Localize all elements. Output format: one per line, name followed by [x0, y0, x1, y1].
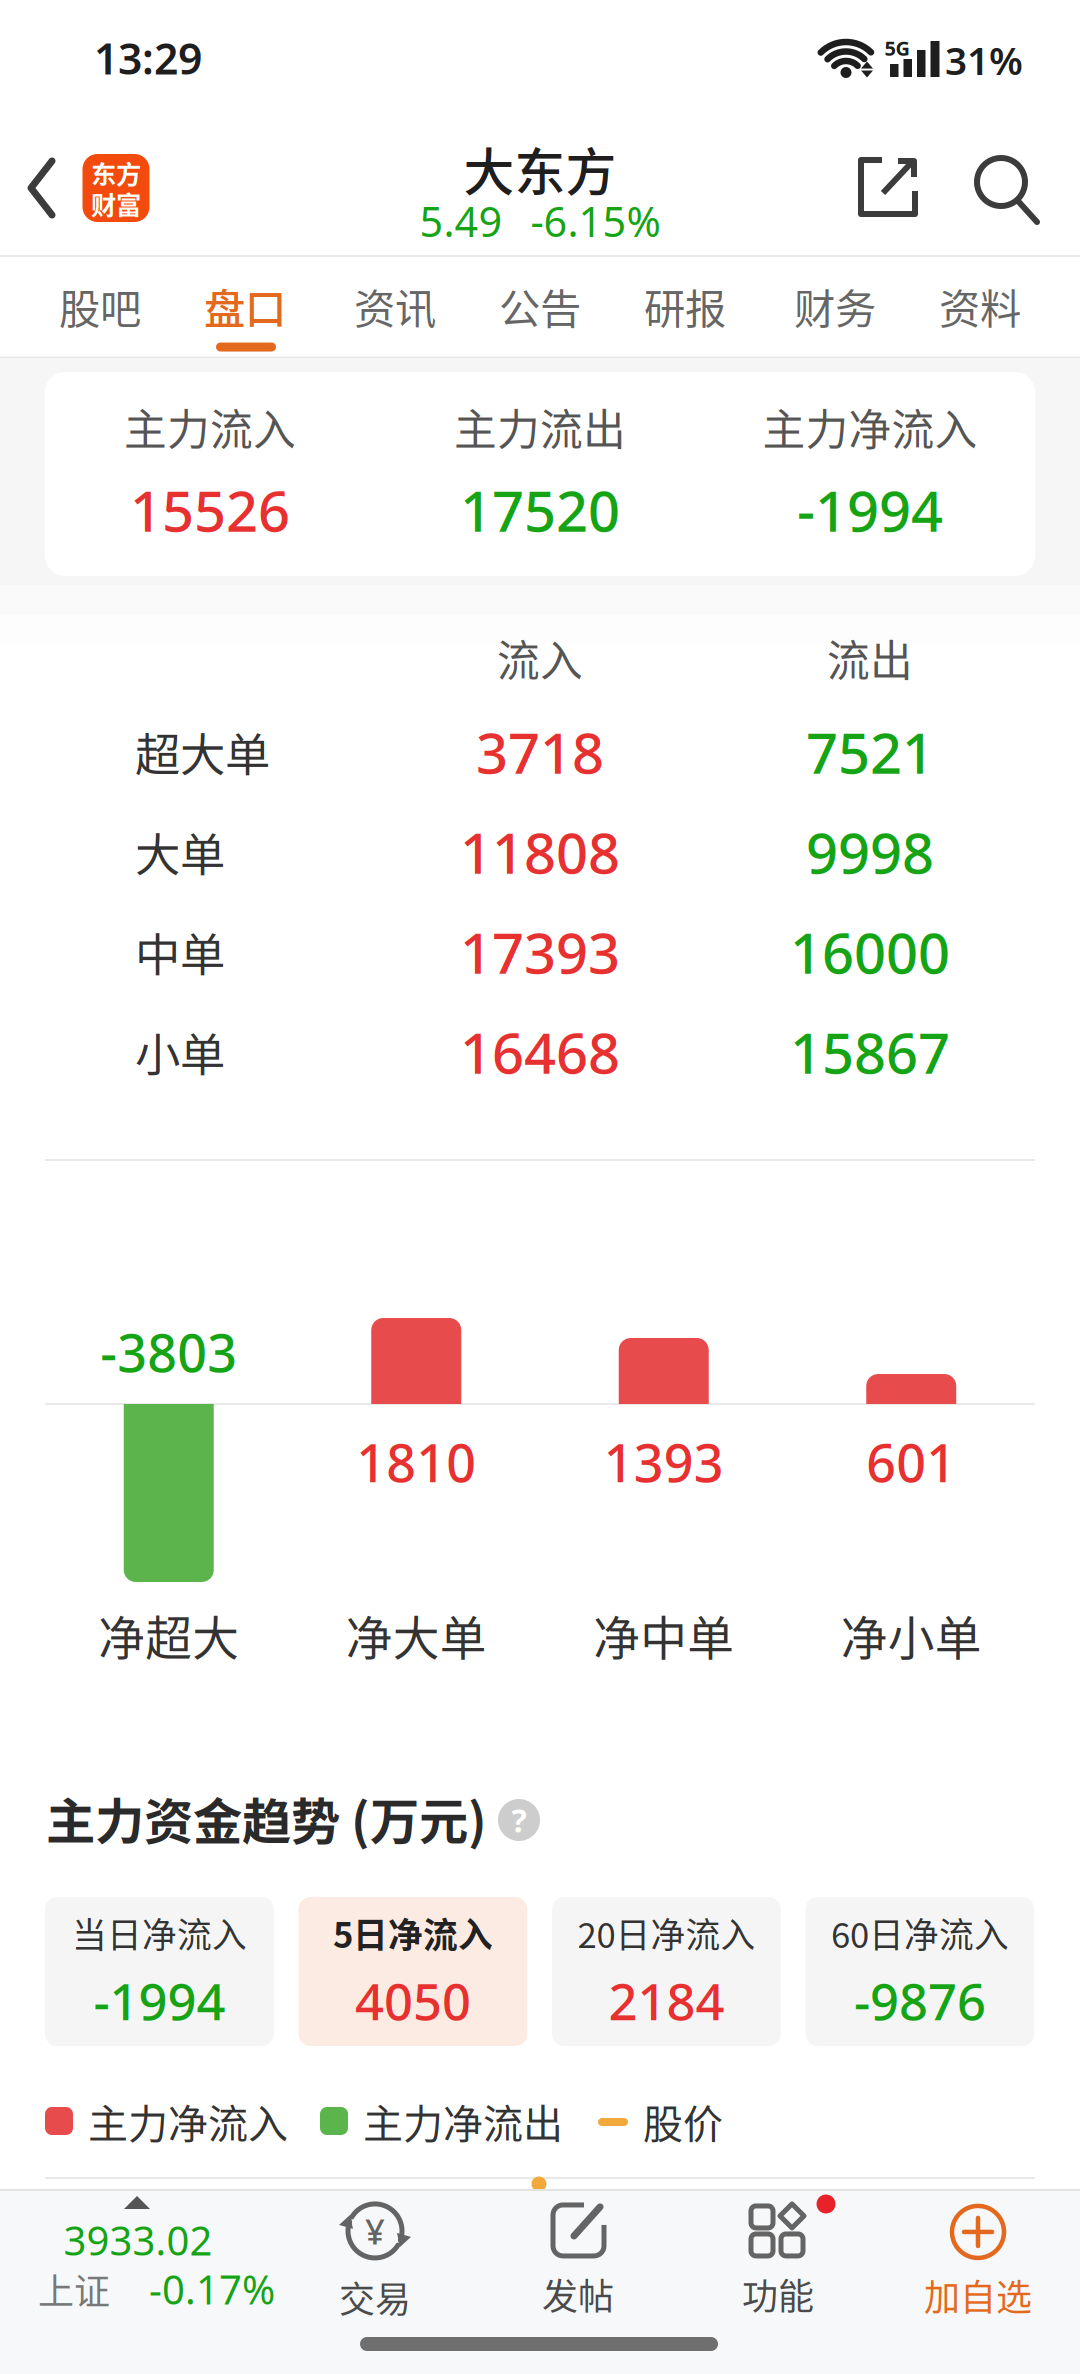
staticText: 15526 [130, 472, 290, 548]
staticText: 31% [945, 34, 1023, 86]
staticText: ? [511, 1798, 526, 1842]
staticText: 60日净流入 [831, 1908, 1009, 1958]
staticText: 1810 [356, 1427, 476, 1497]
button[interactable]: 20日净流入 [552, 1897, 781, 2046]
staticText: 3933.02 [63, 2213, 212, 2267]
staticText: 流入 [497, 627, 583, 689]
staticText: -0.17% [149, 2262, 275, 2316]
staticText: 主力净流出 [363, 2092, 563, 2150]
staticText: 盘口 [204, 276, 286, 336]
staticText: 财富 [91, 185, 141, 222]
button[interactable]: 功能 [703, 2194, 853, 2330]
staticText: 发帖 [542, 2268, 614, 2320]
staticText: 财务 [794, 276, 876, 336]
staticText: 当日净流入 [72, 1908, 247, 1958]
button[interactable]: 返回 [20, 138, 64, 238]
staticText: 4050 [355, 1966, 471, 2035]
staticText: 11808 [460, 814, 620, 890]
staticText: 交易 [339, 2271, 411, 2323]
staticText: 主力流出 [454, 396, 626, 458]
staticText: 9998 [806, 814, 934, 890]
staticText: 16000 [790, 914, 950, 990]
staticText: 7521 [806, 714, 934, 790]
staticText: 5.49 [419, 193, 502, 249]
staticText: 15867 [790, 1014, 950, 1090]
staticText: 主力流入 [124, 396, 296, 458]
button[interactable]: 分享 [858, 157, 918, 217]
button[interactable]: 发帖 [503, 2192, 653, 2328]
staticText: 大东方 [463, 132, 616, 206]
button[interactable]: 搜索 [975, 156, 1041, 224]
staticText: 主力净流入 [88, 2092, 288, 2150]
staticText: 主力资金趋势 (万元) [46, 1782, 487, 1854]
staticText: 上证 [38, 2263, 110, 2315]
button[interactable]: 资料 [915, 270, 1045, 342]
staticText: 5G [884, 34, 909, 62]
staticText: -1994 [93, 1966, 225, 2035]
staticText: 净小单 [841, 1601, 982, 1669]
button[interactable]: 研报 [620, 270, 750, 342]
staticText: -9876 [854, 1966, 986, 2035]
button[interactable]: 5日净流入 [298, 1897, 527, 2046]
staticText: 超大单 [135, 719, 270, 785]
button[interactable]: 财务 [770, 270, 900, 342]
staticText: 2184 [608, 1966, 724, 2035]
staticText: 净大单 [346, 1601, 487, 1669]
button[interactable]: 东方财富 [82, 154, 149, 222]
staticText: 加自选 [924, 2269, 1032, 2321]
staticText: 净超大 [98, 1601, 239, 1669]
staticText: 17520 [460, 472, 620, 548]
staticText: 601 [866, 1427, 956, 1497]
staticText: 资料 [939, 276, 1021, 336]
staticText: 资讯 [354, 276, 436, 336]
button[interactable]: 盘口 [180, 270, 310, 342]
button[interactable]: 3933.02 [12, 2190, 292, 2330]
staticText: 大单 [135, 819, 225, 885]
staticText: 公告 [499, 276, 581, 336]
staticText: -3803 [100, 1317, 237, 1387]
staticText: 主力净流入 [762, 396, 977, 458]
staticText: 研报 [644, 276, 726, 336]
button[interactable]: ¥ [300, 2194, 450, 2330]
staticText: 16468 [460, 1014, 620, 1090]
staticText: 流出 [827, 627, 913, 689]
staticText: 17393 [460, 914, 620, 990]
button[interactable]: 说明 [498, 1799, 540, 1841]
staticText: 13:29 [94, 29, 202, 87]
staticText: 小单 [135, 1019, 225, 1085]
staticText: 5日净流入 [333, 1908, 493, 1958]
button[interactable]: 股吧 [35, 270, 165, 342]
staticText: ¥ [365, 2207, 385, 2254]
staticText: 3718 [476, 714, 604, 790]
staticText: 1393 [604, 1427, 724, 1497]
staticText: 功能 [742, 2268, 814, 2320]
button[interactable]: 资讯 [330, 270, 460, 342]
staticText: 20日净流入 [577, 1908, 755, 1958]
staticText: 东方 [91, 154, 141, 191]
button[interactable]: 公告 [475, 270, 605, 342]
button[interactable]: 60日净流入 [805, 1897, 1034, 2046]
staticText: 中单 [135, 919, 225, 985]
staticText: -6.15% [530, 193, 660, 249]
staticText: 股价 [643, 2092, 723, 2150]
staticText: -1994 [797, 472, 943, 548]
staticText: 股吧 [59, 276, 141, 336]
button[interactable]: 加自选 [898, 2194, 1058, 2330]
staticText: 净中单 [593, 1601, 734, 1669]
button[interactable]: 当日净流入 [45, 1897, 274, 2046]
